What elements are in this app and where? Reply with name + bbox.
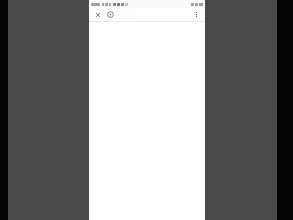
button[interactable]: Close <box>92 9 103 20</box>
button[interactable]: More options <box>191 9 202 20</box>
button[interactable]: Page info <box>105 9 116 20</box>
